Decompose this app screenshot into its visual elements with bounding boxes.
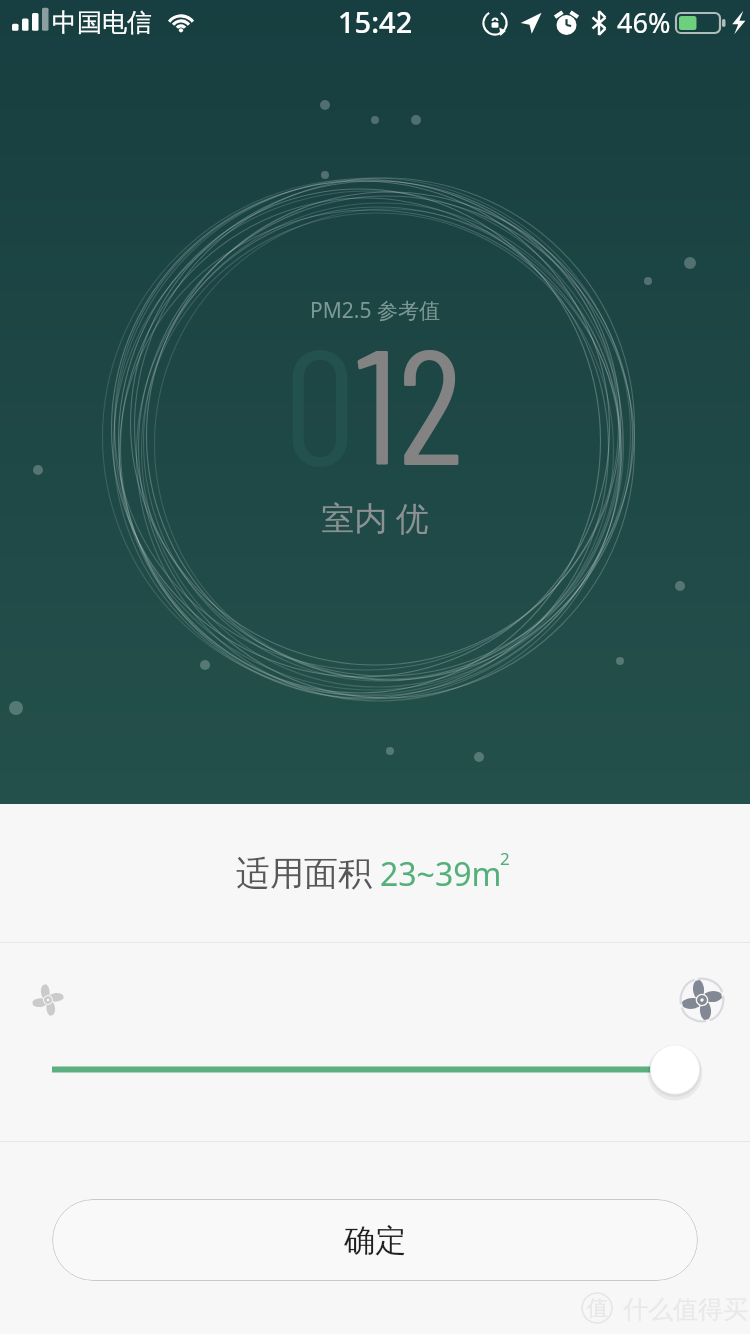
button[interactable]: Low fan speed — [30, 982, 66, 1018]
staticText: 46% — [617, 4, 671, 41]
staticText: 23~39m — [380, 852, 502, 896]
staticText: 2 — [500, 847, 510, 870]
staticText: 12 — [356, 303, 463, 497]
staticText: 室内 优 — [0, 495, 750, 540]
staticText: 中国电信 — [52, 7, 152, 38]
staticText: 什么值得买 — [623, 1294, 748, 1325]
staticText: PM2.5 参考值 — [0, 296, 750, 325]
staticText: 15:42 — [338, 2, 413, 41]
staticText: 0 — [284, 303, 356, 497]
staticText: 确定 — [344, 1221, 406, 1260]
staticText: 适用面积 — [236, 852, 372, 895]
button[interactable]: High fan speed — [679, 977, 725, 1023]
staticText: 值 — [587, 1295, 608, 1321]
button[interactable]: 确定 — [52, 1199, 698, 1281]
button[interactable] — [0, 1030, 750, 1110]
